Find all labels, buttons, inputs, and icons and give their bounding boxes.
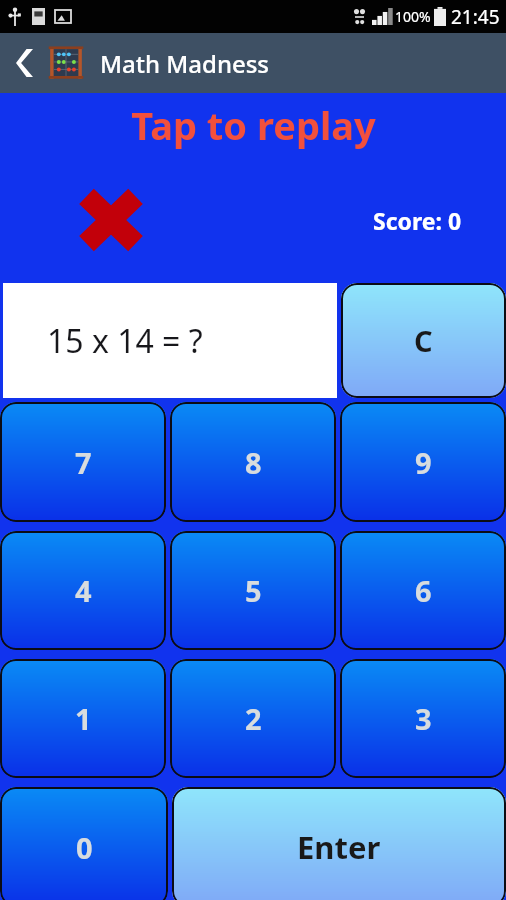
button[interactable]: 2 [170, 659, 336, 778]
staticText: 1 [75, 699, 92, 738]
staticText: Math Madness [100, 47, 270, 80]
staticText: 15 x 14 = ? [47, 319, 203, 363]
staticText: 9 [415, 443, 432, 482]
staticText: 5 [245, 571, 262, 610]
button[interactable]: C [341, 283, 506, 398]
staticText: 0 [76, 828, 93, 867]
button[interactable]: 4 [0, 531, 166, 650]
button[interactable]: Enter [172, 787, 506, 900]
button[interactable]: Navigate up [0, 33, 48, 93]
staticText: 2 [245, 699, 262, 738]
button[interactable]: 0 [0, 787, 168, 900]
button[interactable]: 1 [0, 659, 166, 778]
staticText: 3 [415, 699, 432, 738]
button[interactable]: Tap to replay [0, 93, 506, 157]
staticText: Tap to replay [131, 99, 376, 151]
button[interactable]: 3 [340, 659, 506, 778]
button[interactable]: 7 [0, 402, 166, 522]
staticText: 21:45 [451, 4, 500, 30]
staticText: 8 [245, 443, 262, 482]
staticText: C [414, 321, 433, 360]
staticText: 6 [415, 571, 432, 610]
staticText: 4 [75, 571, 92, 610]
button[interactable]: 9 [340, 402, 506, 522]
button[interactable]: 15 x 14 = ? [3, 283, 337, 398]
staticText: Enter [297, 826, 381, 868]
button[interactable]: 5 [170, 531, 336, 650]
staticText: 100% [395, 7, 431, 26]
button[interactable]: 8 [170, 402, 336, 522]
staticText: 7 [75, 443, 92, 482]
staticText: Score: 0 [373, 205, 462, 236]
button[interactable]: 6 [340, 531, 506, 650]
